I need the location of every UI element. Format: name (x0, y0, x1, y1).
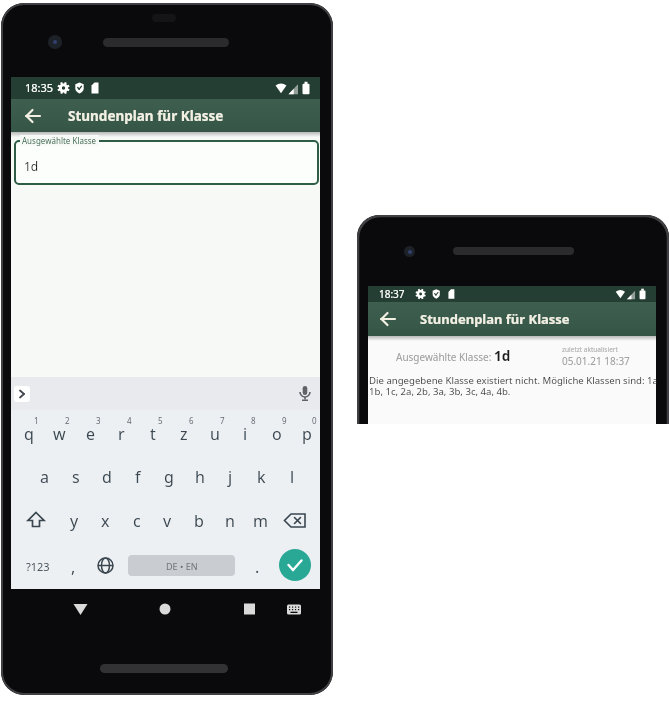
button[interactable]: v (152, 499, 183, 543)
staticText: r (118, 423, 125, 445)
staticText: n (225, 510, 235, 532)
staticText: c (133, 510, 141, 532)
button[interactable]: d (91, 455, 122, 499)
button[interactable]: k (246, 455, 277, 499)
button[interactable]: q (13, 411, 44, 456)
staticText: zuletzt aktualisiert (562, 345, 618, 354)
button[interactable]: m (245, 499, 276, 543)
staticText: l (290, 466, 295, 488)
staticText: Stundenplan für Klasse (68, 107, 224, 125)
button[interactable] (283, 512, 307, 530)
staticText: y (70, 510, 79, 532)
button[interactable]: . (255, 556, 260, 578)
button[interactable] (97, 557, 114, 574)
staticText: d (102, 466, 112, 488)
button[interactable] (25, 510, 47, 532)
staticText: 18:37 (379, 287, 405, 301)
staticText: 18:35 (25, 80, 54, 95)
button[interactable]: u (199, 411, 230, 456)
staticText: e (86, 423, 96, 445)
staticText: b (194, 510, 204, 532)
button[interactable]: z (168, 411, 199, 456)
staticText: x (101, 510, 110, 532)
button[interactable]: DE • EN (128, 555, 235, 576)
button[interactable]: w (44, 411, 75, 456)
staticText: t (150, 423, 156, 445)
staticText: j (228, 466, 233, 488)
button[interactable]: 1d (14, 140, 319, 185)
staticText: z (180, 423, 188, 445)
staticText: 6 (189, 415, 194, 426)
staticText: Ausgewählte Klasse (22, 135, 97, 146)
staticText: u (210, 423, 220, 445)
staticText: 3 (96, 415, 101, 426)
staticText: o (272, 423, 282, 445)
staticText: 7 (220, 415, 225, 426)
staticText: 1b, 1c, 2a, 2b, 3a, 3b, 3c, 4a, 4b. (369, 385, 511, 398)
button[interactable]: f (122, 455, 153, 499)
button[interactable]: ?123 (26, 559, 50, 574)
button[interactable]: g (153, 455, 184, 499)
staticText: DE • EN (166, 560, 198, 572)
button[interactable]: a (29, 455, 60, 499)
staticText: 8 (251, 415, 256, 426)
button[interactable] (279, 549, 311, 581)
staticText: Stundenplan für Klasse (420, 310, 570, 328)
staticText: 0 (312, 415, 317, 426)
button[interactable]: t (137, 411, 168, 456)
staticText: h (195, 466, 205, 488)
staticText: Die angegebene Klasse existiert nicht. M… (369, 374, 657, 387)
button[interactable]: p (292, 411, 322, 456)
staticText: 9 (282, 415, 287, 426)
button[interactable]: y (59, 499, 90, 543)
button[interactable] (379, 310, 397, 328)
button[interactable]: x (90, 499, 121, 543)
button[interactable]: , (71, 556, 76, 578)
staticText: i (243, 423, 248, 445)
button[interactable]: e (75, 411, 106, 456)
staticText: 5 (158, 415, 163, 426)
staticText: 1 (34, 415, 39, 426)
staticText: a (40, 466, 49, 488)
staticText: m (253, 510, 268, 532)
button[interactable]: i (230, 411, 261, 456)
button[interactable]: h (184, 455, 215, 499)
staticText: w (53, 423, 66, 445)
staticText: s (72, 466, 80, 488)
button[interactable]: o (261, 411, 292, 456)
staticText: q (24, 423, 34, 445)
button[interactable]: j (215, 455, 246, 499)
staticText: f (135, 466, 141, 488)
staticText: p (302, 423, 312, 445)
staticText: 1d (494, 347, 511, 365)
button[interactable] (298, 384, 312, 404)
button[interactable]: n (214, 499, 245, 543)
button[interactable] (14, 386, 30, 402)
staticText: 1d (24, 158, 39, 174)
staticText: v (163, 510, 172, 532)
staticText: k (257, 466, 266, 488)
button[interactable]: l (277, 455, 308, 499)
button[interactable]: c (121, 499, 152, 543)
button[interactable]: r (106, 411, 137, 456)
button[interactable]: b (183, 499, 214, 543)
staticText: Ausgewählte Klasse: (396, 350, 492, 364)
button[interactable] (24, 107, 42, 125)
staticText: 2 (65, 415, 70, 426)
staticText: 4 (127, 415, 132, 426)
button[interactable]: s (60, 455, 91, 499)
staticText: 05.01.21 18:37 (562, 354, 630, 368)
staticText: g (164, 466, 174, 488)
